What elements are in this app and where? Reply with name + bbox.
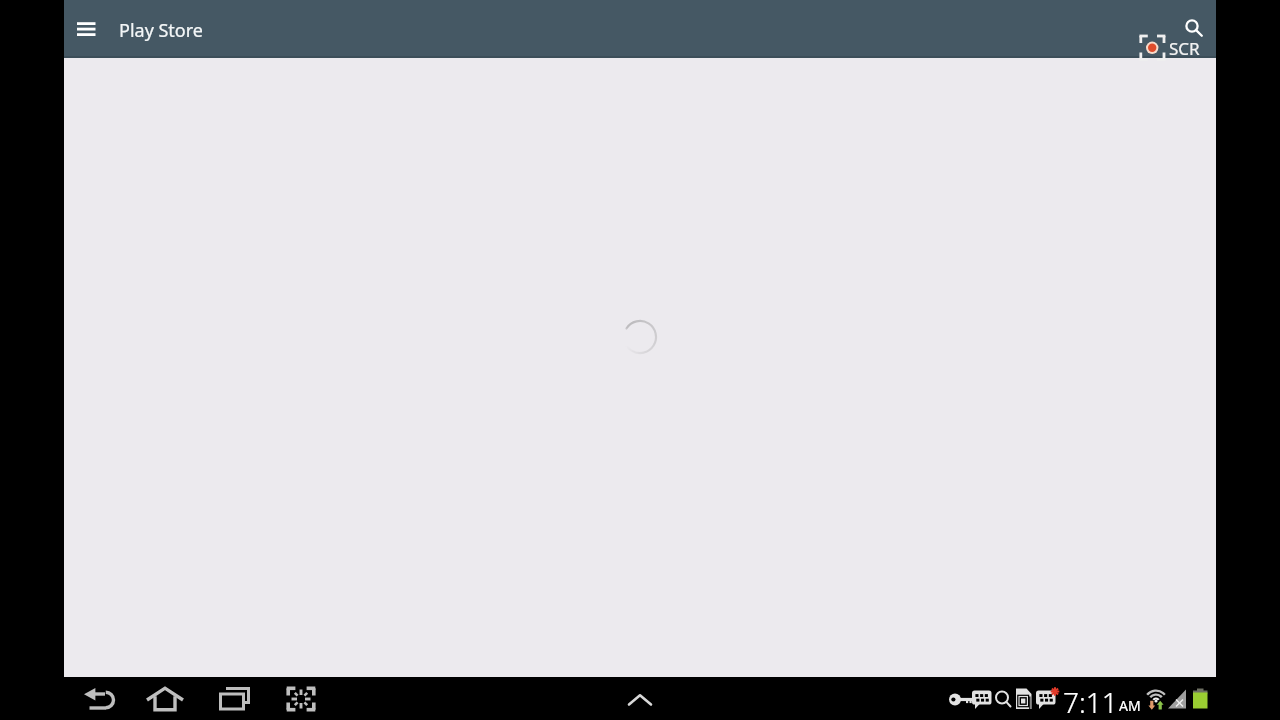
button[interactable]: Recent apps	[214, 677, 258, 720]
button[interactable]: Show navigation bar	[616, 677, 664, 720]
button[interactable]: Search	[1168, 2, 1216, 50]
button[interactable]: Home	[143, 680, 187, 720]
staticText: Play Store	[119, 18, 203, 43]
button[interactable]: Back	[80, 680, 124, 720]
staticText: SCR	[1169, 37, 1200, 60]
button[interactable]: Open navigation drawer	[65, 5, 113, 53]
staticText: 7:11	[1063, 683, 1118, 720]
button[interactable]: Screenshot	[279, 677, 323, 720]
staticText: AM	[1119, 696, 1141, 715]
